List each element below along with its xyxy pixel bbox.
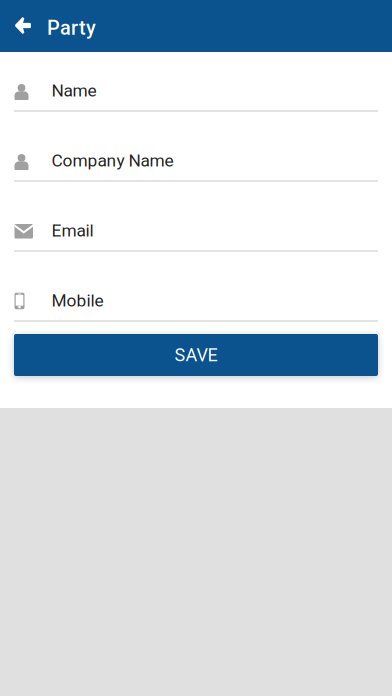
button[interactable]: Name: [0, 52, 392, 112]
button[interactable]: Email: [0, 182, 392, 252]
button[interactable]: Mobile: [0, 252, 392, 322]
staticText: SAVE: [174, 344, 217, 366]
staticText: Company Name: [51, 150, 173, 171]
button[interactable]: Company Name: [0, 112, 392, 182]
staticText: Mobile: [51, 290, 103, 311]
button[interactable]: SAVE: [14, 334, 378, 376]
button[interactable]: Back: [0, 0, 46, 52]
staticText: Name: [51, 80, 96, 101]
staticText: Email: [51, 220, 93, 241]
staticText: Party: [47, 16, 96, 40]
